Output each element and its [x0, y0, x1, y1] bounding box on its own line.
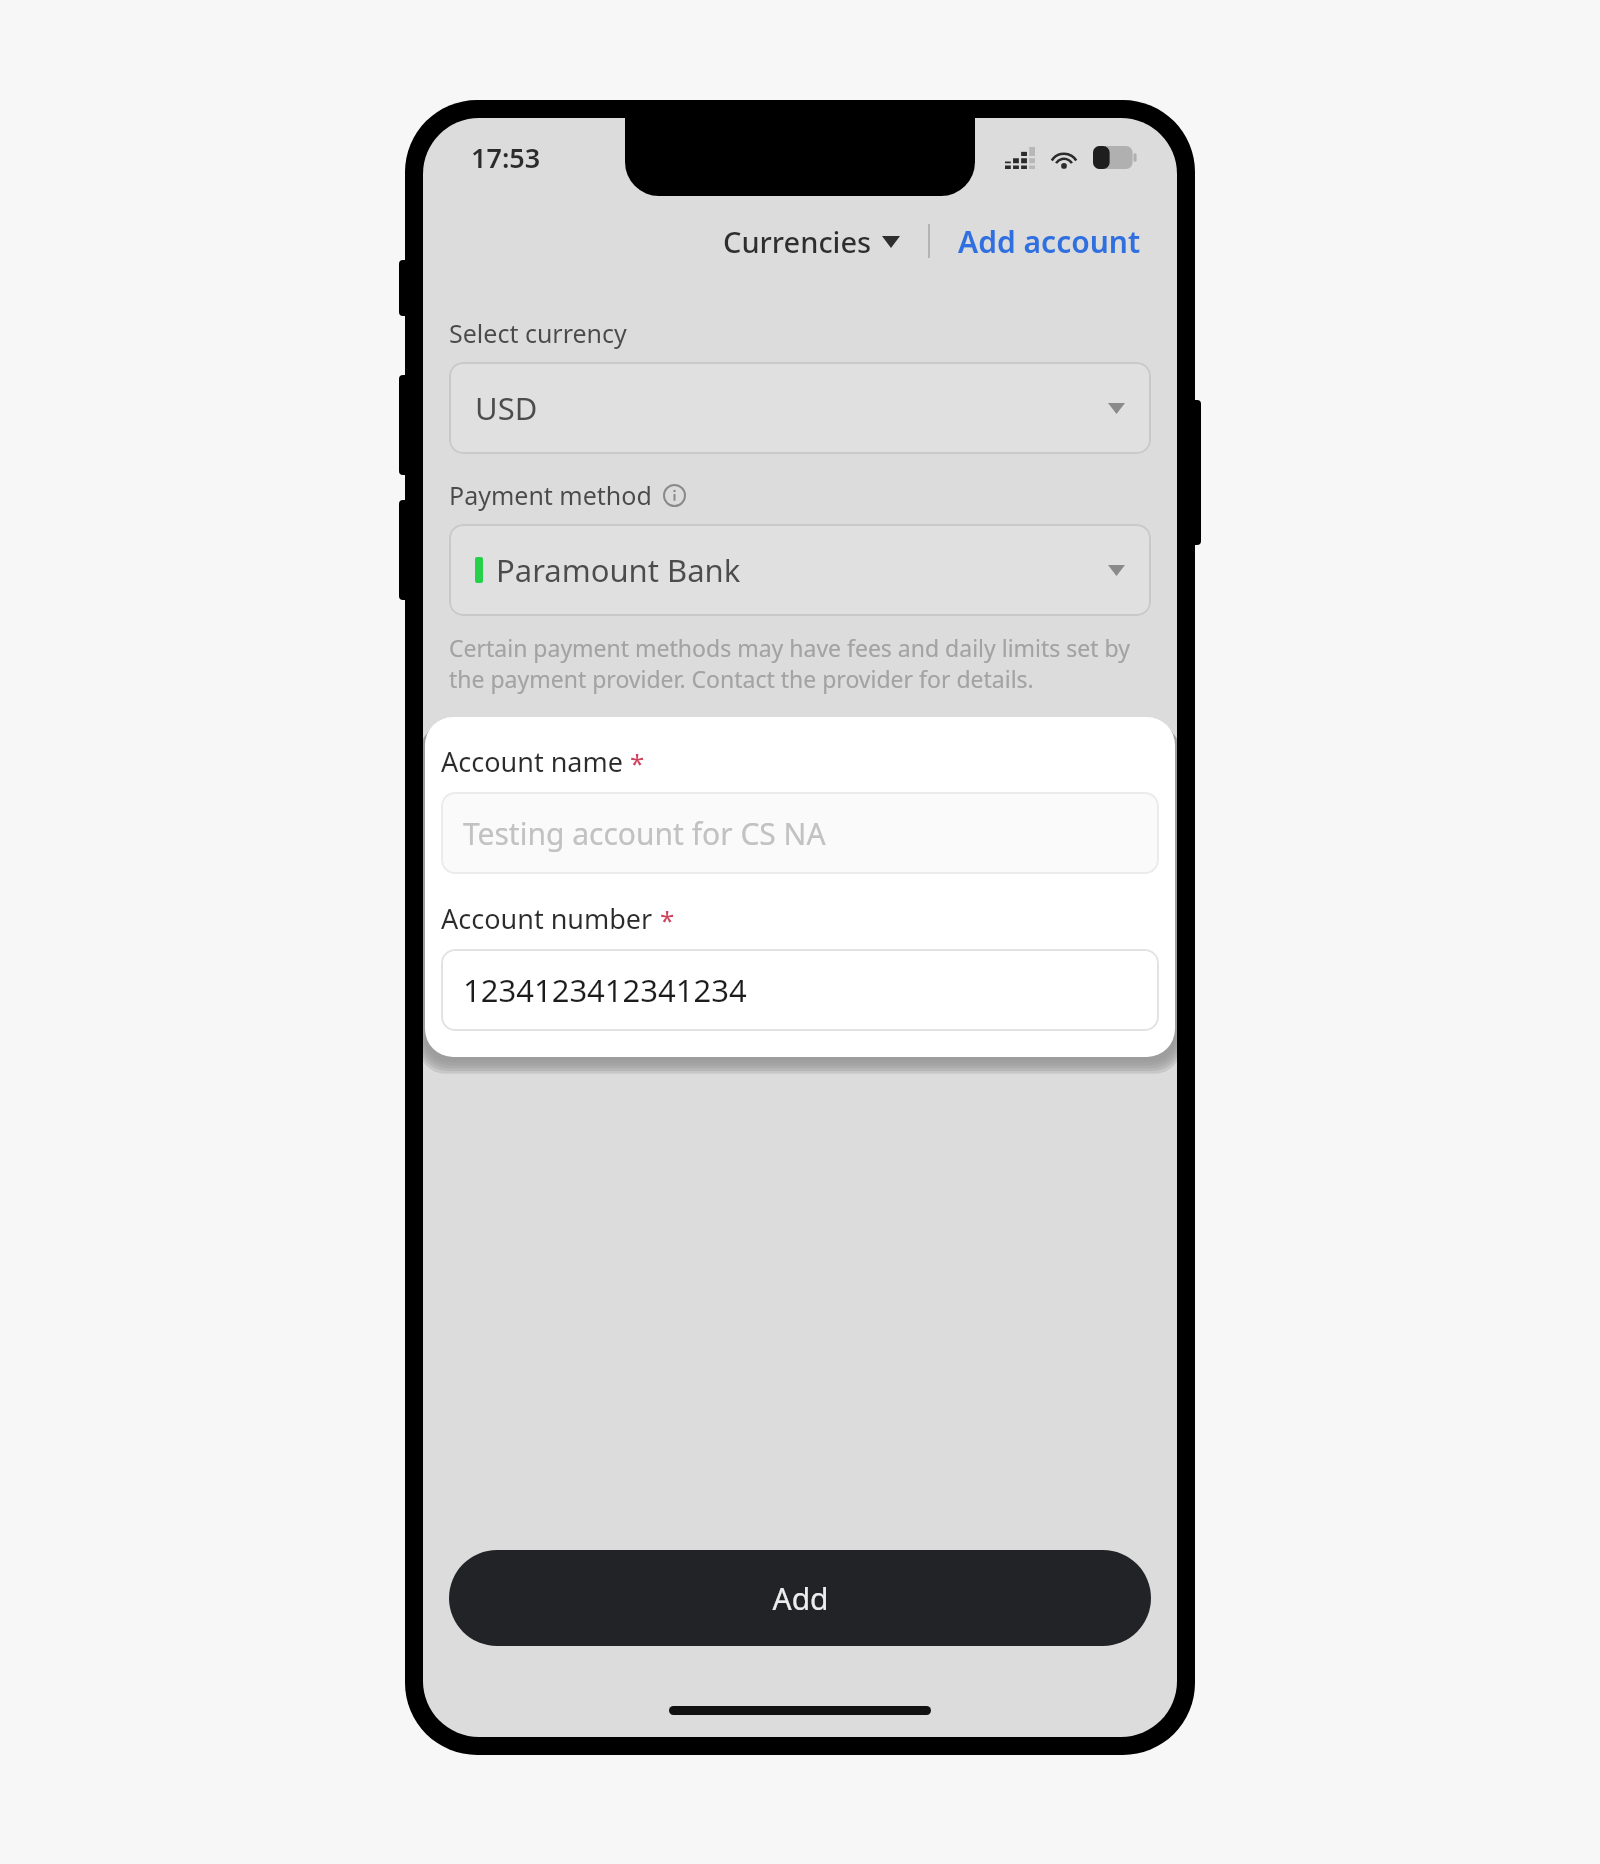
staticText: Select currency — [449, 316, 627, 350]
button[interactable]: Add account — [952, 215, 1147, 268]
staticText: Account number — [441, 900, 653, 937]
staticText: 1234123412341234 — [463, 969, 747, 1011]
staticText: * — [630, 745, 645, 780]
button[interactable]: USD — [449, 362, 1151, 454]
staticText: Add account — [958, 221, 1141, 262]
staticText: Testing account for CS NA — [463, 813, 826, 854]
staticText: 17:53 — [471, 139, 541, 176]
staticText: Account name — [441, 743, 623, 780]
staticText: Paramount Bank — [496, 549, 741, 591]
button[interactable]: Paramount Bank — [449, 524, 1151, 616]
staticText: USD — [475, 387, 538, 429]
staticText: Certain payment methods may have fees an… — [449, 632, 1151, 695]
staticText: Payment method — [449, 478, 652, 512]
staticText: Currencies — [723, 222, 872, 261]
button[interactable]: Add — [449, 1550, 1151, 1646]
staticText: * — [660, 902, 675, 937]
staticText: Add — [772, 1578, 829, 1619]
button[interactable]: 1234123412341234 — [441, 949, 1159, 1031]
button[interactable]: Testing account for CS NA — [441, 792, 1159, 874]
button[interactable]: Currencies — [717, 216, 906, 267]
button[interactable]: Payment method info — [662, 483, 686, 507]
